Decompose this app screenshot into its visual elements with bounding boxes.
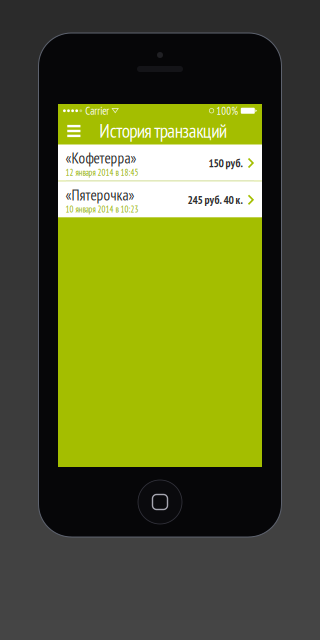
staticText: «Кофетерра» [65, 148, 136, 168]
staticText: 12 января 2014 в 18:45 [65, 167, 138, 178]
button[interactable]: «Пятерочка» [58, 181, 262, 217]
button[interactable]: Menu [67, 117, 80, 144]
button[interactable]: «Кофетерра» [58, 144, 262, 180]
staticText: Carrier [85, 104, 109, 118]
staticText: 100% [216, 104, 238, 118]
staticText: 10 января 2014 в 10:23 [65, 204, 138, 215]
staticText: 245 руб. 40 к. [187, 192, 242, 207]
staticText: 150 руб. [208, 156, 242, 170]
staticText: История транзакций [99, 118, 227, 143]
staticText: «Пятерочка» [65, 185, 134, 205]
